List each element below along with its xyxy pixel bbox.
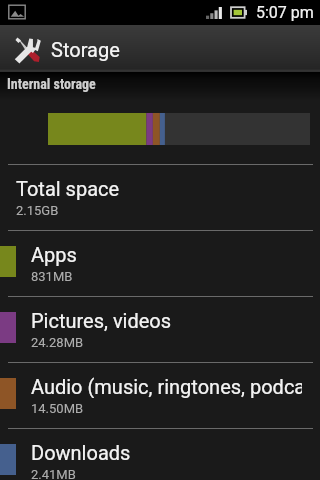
button[interactable]: Settings xyxy=(0,25,320,72)
staticText: Pictures, videos xyxy=(31,309,172,332)
button[interactable]: Downloads xyxy=(0,429,320,480)
staticText: Total space xyxy=(16,177,120,200)
staticText: 2.41MB xyxy=(31,467,76,480)
staticText: 831MB xyxy=(31,269,73,284)
staticText: 14.50MB xyxy=(31,401,84,416)
staticText: Internal storage xyxy=(7,76,96,92)
staticText: 24.28MB xyxy=(31,335,84,350)
button[interactable]: Apps xyxy=(0,231,320,296)
staticText: Apps xyxy=(31,243,77,266)
staticText: Downloads xyxy=(31,441,131,464)
button[interactable]: Audio (music, ringtones, podcasts) xyxy=(0,363,320,428)
staticText: Storage xyxy=(51,38,120,61)
staticText: 5:07 pm xyxy=(256,3,314,22)
staticText: Audio (music, ringtones, podcasts) xyxy=(31,375,302,398)
staticText: 2.15GB xyxy=(16,203,59,218)
other: Settings xyxy=(10,33,43,66)
button[interactable]: Pictures, videos xyxy=(0,297,320,362)
button[interactable]: Total space xyxy=(0,165,320,230)
other: Screenshot captured xyxy=(8,4,26,20)
